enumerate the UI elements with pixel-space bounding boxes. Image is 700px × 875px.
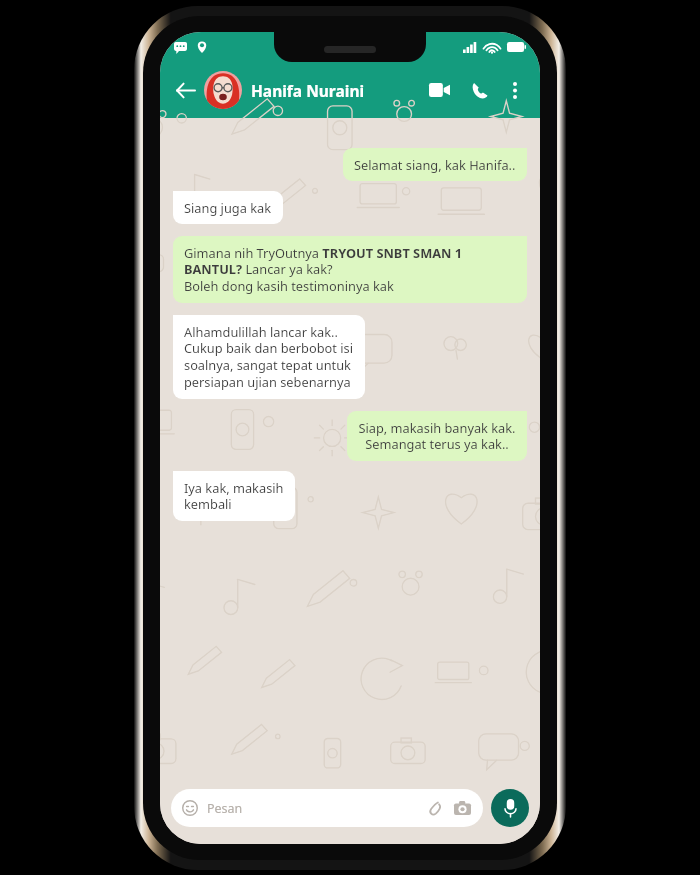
staticText: Siap, makasih banyak kak. Semangat terus… (358, 419, 516, 453)
staticText: Selamat siang, kak Hanifa.. (354, 156, 516, 173)
staticText: Siang juga kak (184, 199, 272, 216)
button[interactable]: More options (500, 75, 530, 105)
staticText: Alhamdulillah lancar kak.. Cukup baik da… (184, 323, 354, 391)
button[interactable]: Alhamdulillah lancar kak.. Cukup baik da… (173, 315, 365, 399)
button[interactable]: Profile photo (204, 71, 242, 109)
button[interactable]: Siang juga kak (173, 191, 283, 224)
button[interactable]: Hanifa Nuraini (251, 80, 422, 101)
button[interactable]: Gimana nih TryOutnya TRYOUT SNBT SMAN 1 … (173, 236, 527, 303)
button[interactable]: Back (168, 73, 202, 107)
staticText: Pesan (207, 800, 243, 817)
button[interactable]: Attach (425, 798, 445, 818)
button[interactable]: Video call (422, 73, 456, 107)
button[interactable]: Siap, makasih banyak kak. Semangat terus… (347, 411, 527, 461)
button[interactable]: Selamat siang, kak Hanifa.. (343, 148, 527, 181)
button[interactable]: Camera (452, 798, 472, 818)
button[interactable]: Record voice message (491, 789, 529, 827)
staticText: Hanifa Nuraini (251, 80, 365, 101)
button[interactable]: Iya kak, makasih kembali (173, 471, 295, 521)
staticText: Gimana nih TryOutnya TRYOUT SNBT SMAN 1 … (184, 244, 516, 295)
staticText: Iya kak, makasih kembali (184, 479, 284, 513)
button[interactable]: Voice call (462, 73, 496, 107)
button[interactable]: Pesan (171, 789, 483, 827)
